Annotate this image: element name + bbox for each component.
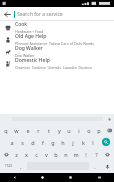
button[interactable]: Back (0, 7, 14, 21)
button[interactable]: , (16, 160, 26, 172)
button[interactable]: ? (91, 148, 101, 160)
staticText: z (15, 151, 18, 158)
staticText: Search for a service (17, 11, 63, 18)
button[interactable]: Old Age Help (0, 33, 114, 45)
staticText: s (21, 139, 24, 146)
staticText: l (92, 139, 94, 146)
button[interactable]: o (84, 124, 94, 136)
button[interactable]: Home (28, 173, 56, 182)
button[interactable]: i (74, 124, 84, 136)
button[interactable]: Keyboard hide (85, 173, 114, 182)
button[interactable]: Search (102, 138, 110, 146)
staticText: Dog Walker (15, 53, 35, 57)
staticText: o (87, 127, 91, 134)
button[interactable]: f (38, 136, 48, 148)
staticText: Cleaning, Cooking, Utensils, Laundry, Du… (15, 65, 92, 69)
staticText: c (35, 151, 38, 158)
staticText: e (26, 127, 30, 134)
staticText: j (72, 139, 74, 146)
staticText: Cook (15, 21, 28, 28)
staticText: ?123 (5, 164, 12, 168)
staticText: i (78, 127, 80, 134)
button[interactable]: Voice input (100, 160, 114, 172)
staticText: q (4, 127, 8, 134)
staticText: Physical Assistance, Taking Care of Dail… (15, 41, 94, 45)
button[interactable]: . (90, 160, 100, 172)
button[interactable]: Domestic Help (0, 57, 114, 69)
staticText: h (61, 139, 65, 146)
button[interactable]: Dog Walker (0, 45, 114, 57)
button[interactable]: v (41, 148, 51, 160)
staticText: Domestic Help (15, 57, 50, 64)
button[interactable]: w (11, 124, 22, 136)
button[interactable]: Shift (0, 148, 12, 160)
button[interactable]: z (12, 148, 21, 160)
button[interactable]: p (94, 124, 104, 136)
button[interactable]: e (22, 124, 33, 136)
button[interactable]: a (6, 136, 17, 148)
button[interactable]: Settings (107, 117, 112, 122)
staticText: y (58, 127, 61, 134)
staticText: x (25, 151, 28, 158)
staticText: d (31, 139, 35, 146)
staticText: . (94, 163, 96, 170)
button[interactable]: ! (81, 148, 91, 160)
button[interactable]: x (21, 148, 31, 160)
button[interactable]: y (54, 124, 64, 136)
button[interactable]: c (31, 148, 41, 160)
staticText: Hardware • Food (15, 29, 44, 33)
button[interactable]: Backspace (104, 124, 114, 136)
staticText: r (37, 127, 40, 134)
staticText: ? (95, 151, 98, 158)
button[interactable]: t (44, 124, 54, 136)
button[interactable]: Search for a service (14, 7, 114, 21)
staticText: v (45, 151, 48, 158)
staticText: p (97, 127, 101, 134)
button[interactable]: ?123 (0, 160, 16, 172)
button[interactable]: Recents (56, 173, 85, 182)
staticText: u (67, 127, 71, 134)
staticText: n (64, 151, 68, 158)
button[interactable]: n (61, 148, 71, 160)
button[interactable]: h (58, 136, 68, 148)
staticText: g (51, 139, 55, 146)
staticText: k (82, 139, 85, 146)
button[interactable]: Shift right (101, 148, 114, 160)
button[interactable]: Back (0, 173, 28, 182)
button[interactable]: s (17, 136, 28, 148)
staticText: ! (85, 151, 87, 158)
button[interactable]: Cook (0, 21, 114, 33)
staticText: Old Age Help (15, 33, 47, 40)
button[interactable]: k (78, 136, 88, 148)
button[interactable]: b (51, 148, 61, 160)
staticText: b (54, 151, 58, 158)
button[interactable]: m (71, 148, 81, 160)
button[interactable]: r (33, 124, 44, 136)
staticText: Dog Walker (15, 45, 43, 52)
button[interactable]: d (28, 136, 38, 148)
staticText: w (14, 127, 19, 134)
staticText: , (20, 163, 22, 170)
button[interactable]: q (0, 124, 11, 136)
staticText: f (42, 139, 44, 146)
staticText: m (73, 151, 79, 158)
button[interactable]: g (48, 136, 58, 148)
button[interactable]: l (88, 136, 98, 148)
button[interactable]: u (64, 124, 74, 136)
staticText: t (48, 127, 50, 134)
button[interactable]: j (68, 136, 78, 148)
staticText: a (10, 139, 14, 146)
